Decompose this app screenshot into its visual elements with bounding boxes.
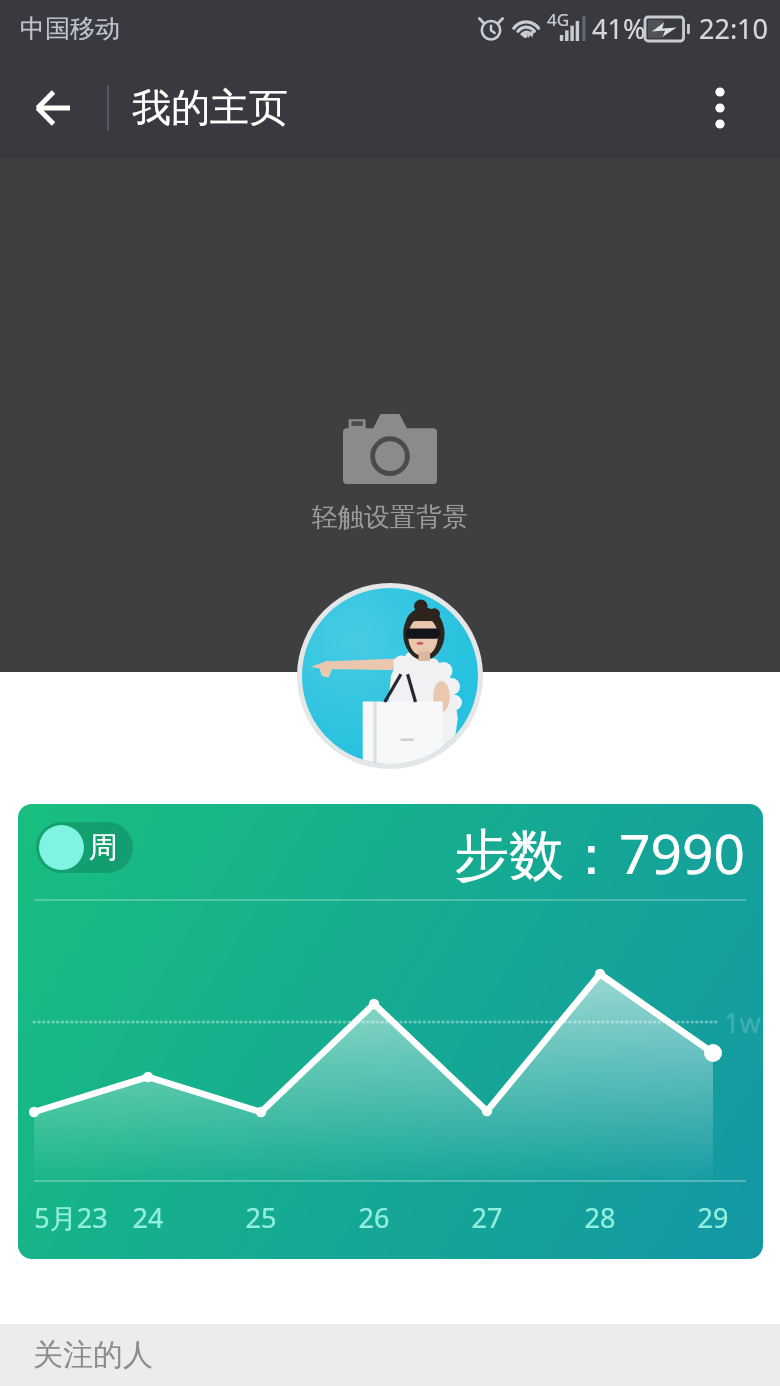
- staticText: 29: [663, 1199, 763, 1236]
- staticText: 22:10: [699, 10, 769, 47]
- staticText: 5月23: [21, 1199, 121, 1236]
- staticText: 26: [324, 1199, 424, 1236]
- staticText: 24: [98, 1199, 198, 1236]
- button[interactable]: Profile photo: [297, 583, 483, 769]
- button[interactable]: 关注的人: [0, 1324, 780, 1386]
- staticText: 周: [89, 829, 118, 866]
- staticText: 我的主页: [132, 83, 288, 132]
- staticText: 1w: [724, 1004, 761, 1041]
- staticText: 25: [211, 1199, 311, 1236]
- staticText: 中国移动: [20, 13, 120, 44]
- staticText: 41%: [592, 10, 646, 47]
- button[interactable]: Back: [16, 71, 90, 145]
- staticText: 4G: [547, 8, 570, 31]
- staticText: 27: [437, 1199, 537, 1236]
- button[interactable]: Set background photo: [0, 414, 780, 534]
- staticText: 关注的人: [33, 1336, 153, 1374]
- button[interactable]: 周: [18, 804, 763, 1259]
- staticText: 步数：7990: [454, 815, 745, 890]
- button[interactable]: 周: [36, 822, 133, 873]
- button[interactable]: More options: [689, 77, 751, 139]
- staticText: 轻触设置背景: [312, 501, 468, 534]
- staticText: 28: [550, 1199, 650, 1236]
